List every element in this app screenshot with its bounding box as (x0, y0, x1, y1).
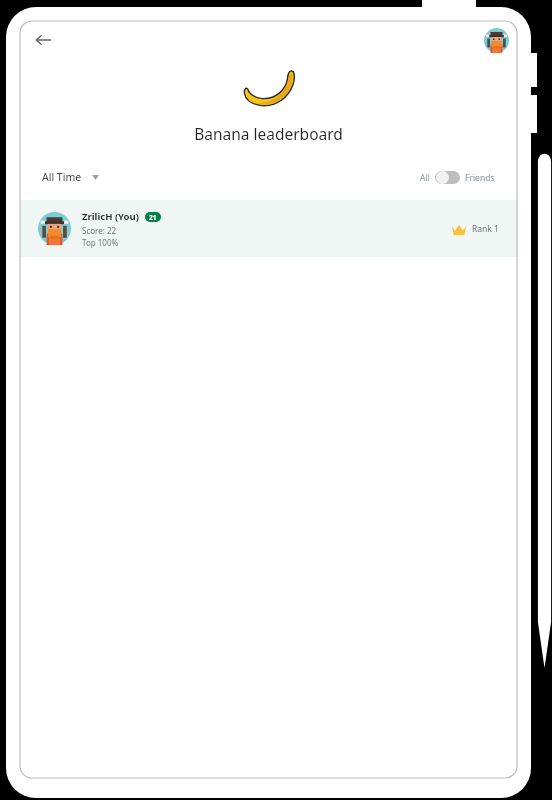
staticText: ZrilicH (You) (82, 210, 139, 223)
button[interactable]: ZrilicH (You) (20, 200, 517, 257)
staticText: Banana leaderboard (194, 123, 343, 144)
button[interactable]: Profile (482, 26, 510, 54)
staticText: All (420, 172, 430, 184)
button[interactable]: Back (26, 23, 60, 57)
staticText: Friends (465, 172, 495, 184)
staticText: Rank 1 (472, 223, 499, 235)
button[interactable]: All Time (40, 167, 101, 187)
staticText: 21 (149, 213, 157, 222)
staticText: Score: 22 (82, 225, 117, 236)
button[interactable]: All (418, 169, 497, 186)
staticText: Top 100% (82, 237, 119, 248)
staticText: All Time (42, 170, 82, 184)
